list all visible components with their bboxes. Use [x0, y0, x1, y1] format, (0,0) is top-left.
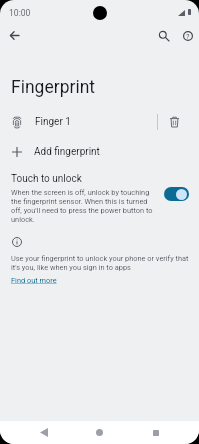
staticText: Use your fingerprint to unlock your phon…: [11, 254, 189, 272]
button[interactable]: Touch to unlock: [0, 169, 199, 225]
button[interactable]: Back: [33, 422, 54, 443]
button[interactable]: Recent apps: [145, 422, 166, 443]
button[interactable]: Find out more: [11, 276, 57, 285]
button[interactable]: Home: [89, 422, 110, 443]
staticText: Fingerprint: [11, 77, 96, 98]
staticText: ?: [186, 32, 190, 41]
staticText: 10:00: [9, 8, 31, 18]
button[interactable]: Back: [2, 23, 27, 48]
staticText: Finger 1: [35, 116, 71, 128]
button[interactable]: Finger 1: [0, 108, 157, 136]
staticText: Touch to unlock: [11, 173, 82, 185]
staticText: When the screen is off, unlock by touchi…: [11, 188, 154, 224]
staticText: Add fingerprint: [34, 146, 100, 158]
button[interactable]: Add fingerprint: [0, 138, 199, 165]
button[interactable]: Delete fingerprint: [158, 108, 191, 136]
button[interactable]: Help: [175, 23, 199, 48]
button[interactable]: Search: [151, 23, 176, 48]
staticText: Find out more: [11, 276, 57, 285]
